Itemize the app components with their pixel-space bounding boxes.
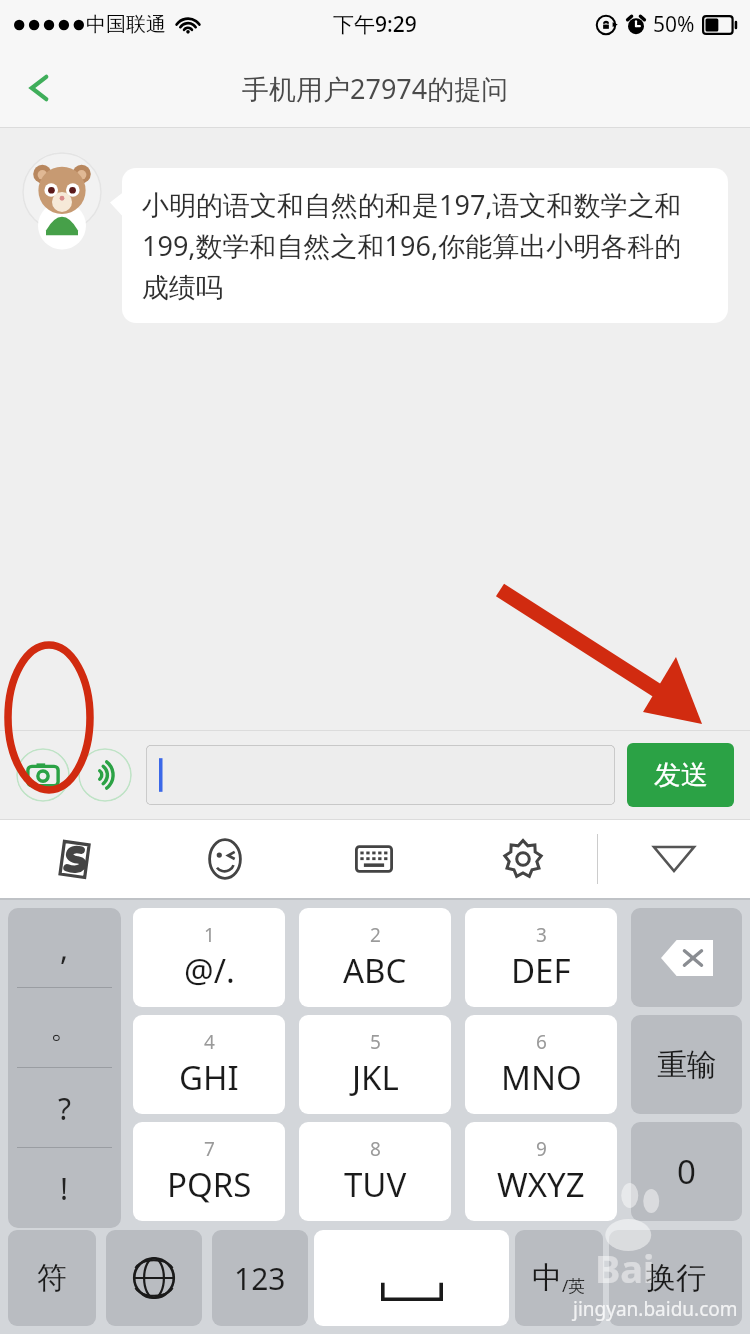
- button[interactable]: Back: [0, 48, 78, 128]
- button[interactable]: 8: [299, 1122, 451, 1221]
- button[interactable]: 中: [515, 1230, 603, 1326]
- staticText: TUV: [344, 1162, 407, 1207]
- button[interactable]: 6: [465, 1015, 617, 1114]
- button[interactable]: 换行: [609, 1230, 742, 1326]
- staticText: MNO: [501, 1055, 582, 1100]
- button[interactable]: ,: [8, 908, 121, 988]
- staticText: /英: [562, 1274, 586, 1297]
- button[interactable]: 3: [465, 908, 617, 1007]
- button[interactable]: 9: [465, 1122, 617, 1221]
- button[interactable]: 5: [299, 1015, 451, 1114]
- staticText: 下午9:29: [333, 10, 417, 39]
- staticText: 4: [204, 1029, 215, 1055]
- staticText: ?: [58, 1088, 72, 1129]
- button[interactable]: 7: [133, 1122, 285, 1221]
- button[interactable]: 0: [631, 1122, 742, 1221]
- staticText: WXYZ: [497, 1162, 585, 1207]
- button[interactable]: Switch language: [106, 1230, 202, 1326]
- button[interactable]: 符: [8, 1230, 96, 1326]
- staticText: 1: [204, 922, 215, 948]
- staticText: 换行: [646, 1259, 706, 1297]
- staticText: !: [60, 1168, 69, 1209]
- staticText: GHI: [179, 1055, 239, 1100]
- button[interactable]: Sogou input: [0, 820, 150, 898]
- button[interactable]: ?: [8, 1068, 121, 1148]
- staticText: 2: [370, 922, 381, 948]
- button[interactable]: Keyboard layout: [299, 820, 448, 898]
- staticText: PQRS: [167, 1162, 252, 1207]
- button[interactable]: 发送: [627, 743, 734, 807]
- button[interactable]: 小明的语文和自然的和是197,语文和数学之和199,数学和自然之和196,你能算…: [122, 168, 728, 323]
- button[interactable]: Emoji: [150, 820, 299, 898]
- button[interactable]: [146, 745, 615, 805]
- staticText: 发送: [654, 758, 708, 792]
- staticText: 6: [536, 1029, 547, 1055]
- staticText: ,: [60, 928, 69, 969]
- button[interactable]: 1: [133, 908, 285, 1007]
- button[interactable]: !: [8, 1148, 121, 1228]
- staticText: 。: [50, 1009, 80, 1047]
- staticText: 7: [204, 1136, 215, 1162]
- button[interactable]: Settings: [448, 820, 597, 898]
- button[interactable]: 123: [212, 1230, 308, 1326]
- staticText: JKL: [352, 1055, 399, 1100]
- staticText: 8: [370, 1136, 381, 1162]
- button[interactable]: 4: [133, 1015, 285, 1114]
- button[interactable]: Space: [314, 1230, 509, 1326]
- staticText: 9: [536, 1136, 547, 1162]
- staticText: 符: [37, 1259, 67, 1297]
- staticText: 123: [234, 1258, 286, 1299]
- staticText: Bai: [595, 1242, 655, 1294]
- staticText: 3: [536, 922, 547, 948]
- staticText: 中: [532, 1259, 562, 1297]
- button[interactable]: Camera: [16, 748, 70, 802]
- staticText: 手机用户27974的提问: [242, 70, 509, 107]
- button[interactable]: 2: [299, 908, 451, 1007]
- staticText: 5: [370, 1029, 381, 1055]
- button[interactable]: Hide keyboard: [598, 820, 750, 898]
- button[interactable]: Voice input: [78, 748, 132, 802]
- staticText: 重输: [657, 1046, 717, 1084]
- button[interactable]: 重输: [631, 1015, 742, 1114]
- staticText: 中国联通: [86, 12, 166, 37]
- staticText: 小明的语文和自然的和是197,语文和数学之和199,数学和自然之和196,你能算…: [142, 186, 708, 305]
- staticText: @/.: [184, 948, 235, 993]
- button[interactable]: Backspace: [631, 908, 742, 1007]
- button[interactable]: 。: [8, 988, 121, 1068]
- staticText: jingyan.baidu.com: [573, 1296, 738, 1322]
- staticText: 0: [677, 1149, 696, 1194]
- staticText: DEF: [511, 948, 571, 993]
- staticText: 50%: [653, 10, 695, 39]
- staticText: ABC: [343, 948, 407, 993]
